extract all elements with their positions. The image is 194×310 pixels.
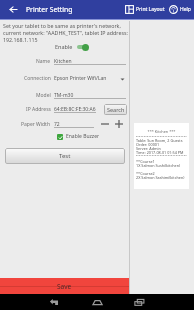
staticText: Table: Sun Room, 2 Guests Order: 00001 S… [136,138,184,155]
button[interactable]: Search [104,104,127,115]
staticText: Search [107,106,125,113]
staticText: Connection [24,75,51,82]
staticText: Help [180,6,191,13]
staticText: **Course1 1X Salmon Sushi(kitchen) [136,159,181,168]
staticText: Paper Width [21,121,51,128]
button[interactable]: Enable [55,42,89,51]
staticText: Epson Printer Wifi/Lan [54,75,107,82]
button[interactable]: Back [0,0,26,19]
staticText: Enable Buzzer [66,133,100,140]
button[interactable]: Test [5,148,125,164]
staticText: Test [59,152,71,160]
staticText: *** Kitchen *** [136,129,187,134]
staticText: Set your tablet to be same as printer's … [3,22,129,43]
staticText: IP Address [26,106,51,113]
staticText: 64:EB:8C:FE:30:A6 [54,106,96,113]
button[interactable]: Enable Buzzer [57,132,100,141]
button[interactable]: Print Layout [124,0,166,19]
button[interactable]: Save [0,278,129,294]
button[interactable]: Decrease paper width [99,118,111,130]
staticText: Kitchen [54,58,72,65]
staticText: Model [36,92,51,99]
staticText: Enable [55,43,73,50]
button[interactable]: Help [168,0,192,19]
button[interactable]: Back [46,294,62,310]
button[interactable]: Increase paper width [113,118,125,130]
staticText: TM-m30 [54,92,74,99]
staticText: **Course2 2X Salmon Sashimi(kitchen) [136,171,185,180]
staticText: Save [57,282,72,291]
button[interactable]: Recent apps [131,294,147,310]
staticText: Name [36,58,51,65]
staticText: Print Layout [136,6,165,13]
button[interactable]: Home [89,294,105,310]
staticText: Printer Setting [26,5,73,14]
staticText: 72 [54,121,60,128]
